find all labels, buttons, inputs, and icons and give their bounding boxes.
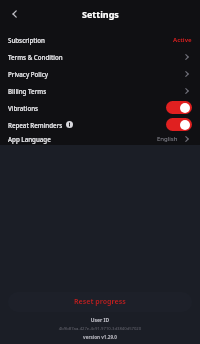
staticText: App Language: [8, 135, 51, 143]
staticText: Settings: [82, 8, 119, 20]
button[interactable]: Terms & Condition: [0, 48, 200, 65]
staticText: 4b9b87aa-427e-4c91-9710-3d3840d57020: [0, 326, 200, 332]
staticText: Vibrations: [8, 104, 39, 112]
button[interactable]: Vibrations: [0, 99, 200, 116]
staticText: version v1.29.0: [0, 334, 200, 340]
button[interactable]: Toggle: [166, 101, 192, 114]
button[interactable]: Subscription: [0, 31, 200, 48]
staticText: Terms & Condition: [8, 53, 63, 61]
button[interactable]: Reset progress: [8, 292, 192, 312]
button[interactable]: Privacy Policy: [0, 65, 200, 82]
staticText: Repeat Reminders: [8, 121, 63, 129]
button[interactable]: Billing Terms: [0, 82, 200, 99]
button[interactable]: Toggle: [166, 118, 192, 131]
staticText: Subscription: [8, 36, 45, 44]
button[interactable]: App Language: [0, 133, 200, 145]
staticText: Reset progress: [74, 297, 126, 307]
button[interactable]: Repeat Reminders: [0, 116, 200, 133]
staticText: Active: [173, 36, 192, 44]
staticText: English: [157, 135, 178, 143]
button[interactable]: Back: [8, 7, 22, 21]
staticText: User ID: [0, 317, 200, 324]
staticText: Privacy Policy: [8, 70, 48, 78]
staticText: Billing Terms: [8, 87, 47, 95]
